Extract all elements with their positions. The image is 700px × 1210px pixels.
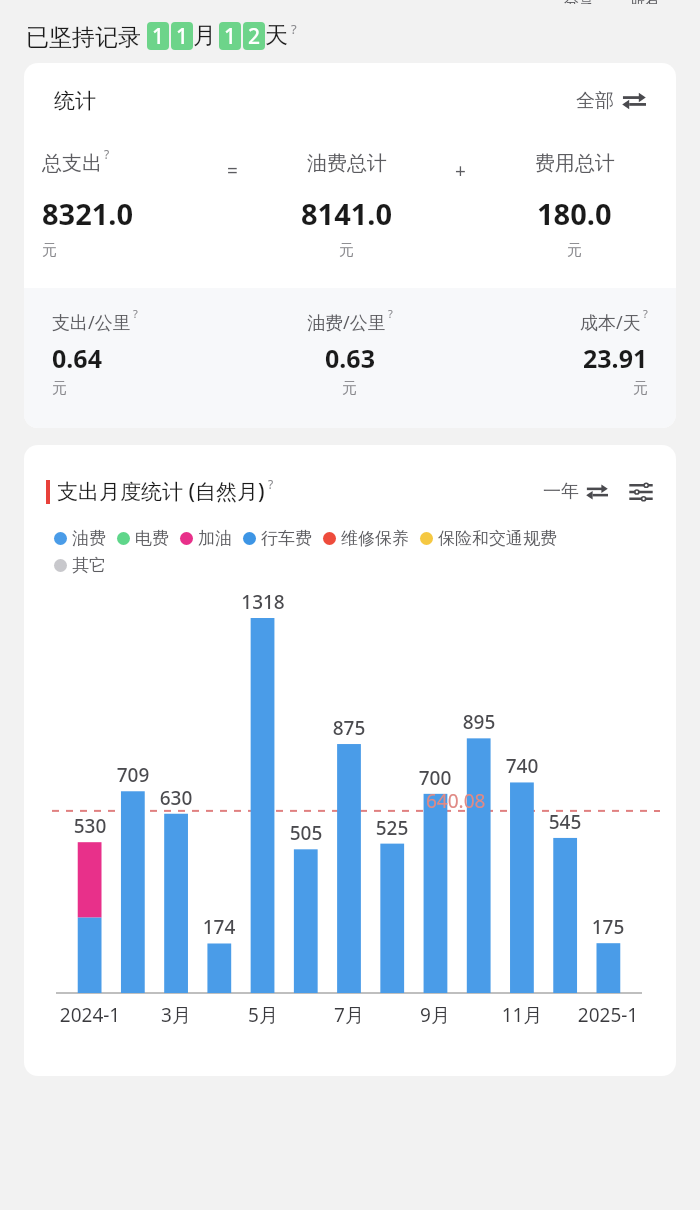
staticText: 元 (633, 379, 648, 398)
staticText: 支出月度统计 (自然月) (57, 477, 265, 506)
other: 切换周期 (586, 481, 608, 503)
button[interactable]: 全部 (572, 85, 650, 117)
staticText: 元 (42, 241, 57, 260)
staticText: 895 (449, 709, 509, 735)
staticText: 8141.0 (301, 194, 393, 233)
staticText: 7月 (309, 1002, 389, 1028)
staticText: 700 (405, 765, 465, 791)
staticText: 505 (276, 820, 336, 846)
staticText: 元 (567, 241, 582, 260)
staticText: ? (133, 306, 138, 321)
staticText: 2024-1 (50, 1002, 130, 1028)
staticText: 元 (339, 241, 354, 260)
staticText: 11月 (482, 1002, 562, 1028)
staticText: 油费总计 (307, 151, 387, 176)
staticText: 所有 (630, 0, 660, 4)
staticText: 23.91 (583, 341, 648, 375)
staticText: 630 (146, 785, 206, 811)
staticText: 5月 (223, 1002, 303, 1028)
staticText: 530 (60, 813, 120, 839)
staticText: 总支出 (42, 151, 102, 176)
button[interactable]: 一年 (541, 478, 610, 505)
staticText: 175 (578, 914, 638, 940)
staticText: 电费 (135, 528, 169, 549)
staticText: 545 (535, 809, 595, 835)
staticText: 分享 (564, 0, 594, 4)
staticText: 全部 (576, 89, 614, 113)
staticText: 1 (152, 22, 165, 50)
staticText: 709 (103, 762, 163, 788)
staticText: 0.63 (325, 341, 375, 375)
staticText: 费用总计 (535, 151, 615, 176)
staticText: 174 (189, 914, 249, 940)
staticText: 元 (52, 379, 67, 398)
staticText: 一年 (543, 480, 579, 503)
staticText: 已坚持记录 (26, 20, 147, 51)
staticText: 元 (342, 379, 357, 398)
staticText: 8321.0 (42, 194, 134, 233)
staticText: = (227, 158, 238, 184)
staticText: 0.64 (52, 341, 102, 375)
staticText: ? (104, 146, 110, 162)
staticText: 加油 (198, 528, 232, 549)
staticText: 统计 (54, 88, 96, 114)
staticText: 行车费 (261, 528, 312, 549)
staticText: 天 (265, 21, 288, 50)
staticText: 740 (492, 753, 552, 779)
staticText: 640.08 (426, 788, 486, 814)
staticText: 1 (176, 22, 189, 50)
staticText: 油费 (72, 528, 106, 549)
staticText: 成本/天 (580, 310, 641, 335)
staticText: + (455, 158, 466, 184)
staticText: ? (388, 306, 393, 321)
staticText: 维修保养 (341, 528, 409, 549)
staticText: 2 (248, 22, 261, 50)
staticText: 9月 (395, 1002, 475, 1028)
staticText: 3月 (136, 1002, 216, 1028)
staticText: 支出/公里 (52, 310, 131, 335)
staticText: ? (643, 306, 648, 321)
staticText: 2025-1 (568, 1002, 648, 1028)
staticText: ? (291, 20, 297, 38)
staticText: 875 (319, 715, 379, 741)
staticText: 525 (362, 815, 422, 841)
staticText: 油费/公里 (307, 310, 386, 335)
staticText: ? (268, 476, 274, 492)
staticText: 其它 (72, 555, 106, 576)
staticText: 保险和交通规费 (438, 528, 557, 549)
staticText: 1318 (233, 589, 293, 615)
other: 切换 (622, 89, 646, 113)
button[interactable]: 图表设置 (628, 479, 654, 505)
staticText: 1 (224, 22, 237, 50)
staticText: 180.0 (537, 194, 612, 233)
staticText: 月 (193, 21, 216, 50)
